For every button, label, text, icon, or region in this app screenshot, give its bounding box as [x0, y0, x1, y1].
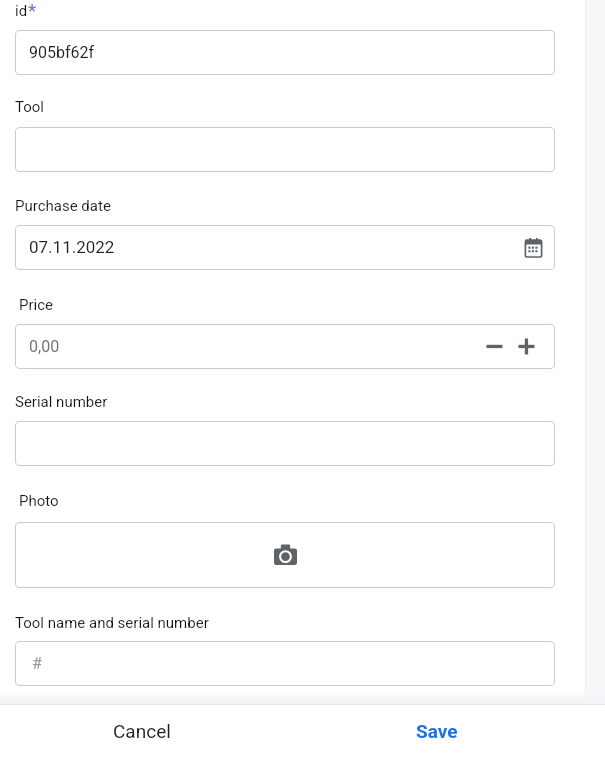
button[interactable]	[15, 127, 555, 172]
staticText: Save	[416, 720, 458, 742]
button[interactable]: 0,00	[15, 324, 555, 369]
staticText: Photo	[19, 492, 59, 510]
staticText: Tool	[15, 98, 44, 116]
button[interactable]: Take photo	[267, 536, 303, 572]
staticText: id	[15, 2, 28, 20]
staticText: Serial number	[15, 393, 108, 411]
button[interactable]: Pick purchase date	[519, 233, 547, 261]
button[interactable]	[15, 421, 555, 466]
staticText: Price	[19, 296, 53, 314]
staticText: Cancel	[113, 720, 171, 742]
staticText: Purchase date	[15, 197, 111, 215]
staticText: #	[32, 654, 42, 673]
button[interactable]: Decrease price	[478, 330, 510, 362]
button[interactable]: 07.11.2022	[15, 225, 555, 270]
button[interactable]: Save	[289, 704, 584, 758]
staticText: 0,00	[29, 337, 60, 356]
button[interactable]: Take photo	[15, 522, 555, 588]
button[interactable]: 905bf62f	[15, 30, 555, 75]
staticText: Tool name and serial number	[15, 614, 209, 632]
staticText: 07.11.2022	[29, 237, 115, 257]
button[interactable]: Cancel	[0, 704, 289, 758]
staticText: 905bf62f	[29, 43, 95, 62]
staticText: *	[28, 0, 37, 21]
button[interactable]: #	[15, 641, 555, 686]
button[interactable]: Increase price	[510, 330, 542, 362]
